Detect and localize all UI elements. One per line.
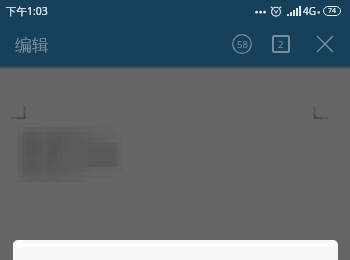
staticText: 2 (278, 38, 284, 51)
staticText: 下午1:03 (6, 4, 48, 18)
staticText: 58 (237, 38, 248, 51)
button[interactable]: Timer 58 seconds (229, 31, 255, 57)
staticText: 编辑 (15, 35, 49, 56)
button[interactable] (13, 240, 338, 260)
button[interactable]: Close (312, 31, 338, 57)
staticText: 74 (328, 6, 337, 16)
button[interactable]: Pages, 2 selected (268, 31, 294, 57)
staticText: 4G (303, 4, 316, 18)
